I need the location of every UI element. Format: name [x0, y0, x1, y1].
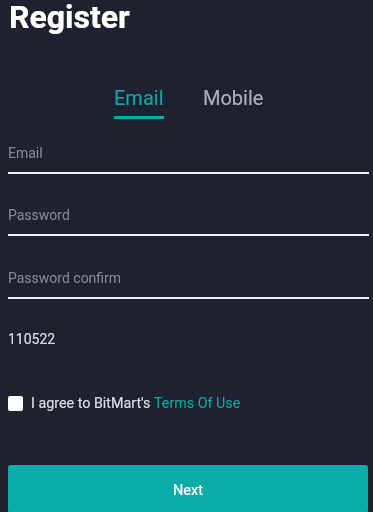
button[interactable]: Mobile	[203, 86, 264, 109]
button[interactable]: Next	[8, 465, 368, 512]
staticText: Password confirm	[8, 270, 122, 286]
button[interactable]: Email	[114, 86, 164, 119]
staticText: 110522	[8, 331, 56, 347]
staticText: Email	[114, 86, 164, 109]
staticText: Next	[173, 482, 203, 499]
button[interactable]	[8, 135, 369, 175]
button[interactable]: Terms Of Use	[154, 395, 241, 412]
staticText: Mobile	[203, 86, 264, 109]
staticText: Password	[8, 207, 70, 223]
button[interactable]	[8, 197, 369, 237]
staticText: Register	[9, 0, 130, 36]
staticText: Email	[8, 145, 43, 161]
button[interactable]: Agree to Terms Of Use checkbox	[8, 396, 23, 411]
staticText: I agree to BitMart's	[31, 395, 154, 412]
button[interactable]	[8, 260, 369, 300]
